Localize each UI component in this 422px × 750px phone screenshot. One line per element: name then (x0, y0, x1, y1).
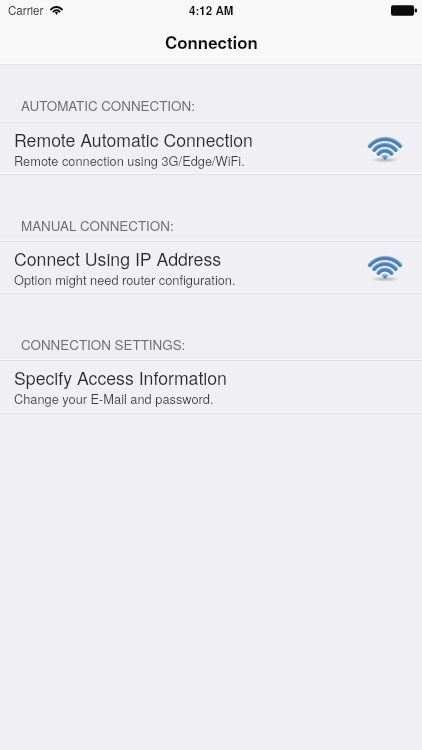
staticText: Connect Using IP Address (14, 246, 222, 271)
staticText: MANUAL CONNECTION: (21, 216, 174, 235)
staticText: Specify Access Information (14, 365, 227, 390)
other: Wi-Fi (369, 254, 401, 278)
button[interactable]: Specify Access Information (0, 360, 422, 413)
other: Wi-Fi (369, 135, 401, 159)
staticText: CONNECTION SETTINGS: (21, 335, 186, 354)
staticText: Option might need router configuration. (14, 270, 236, 288)
staticText: Change your E-Mail and password. (14, 389, 214, 407)
staticText: Connection (165, 30, 258, 54)
button[interactable]: Connect Using IP Address (0, 241, 422, 293)
staticText: 4:12 AM (189, 2, 234, 19)
staticText: Remote Automatic Connection (14, 127, 253, 152)
staticText: Carrier (8, 2, 44, 19)
staticText: Remote connection using 3G/Edge/WiFi. (14, 151, 245, 169)
staticText: AUTOMATIC CONNECTION: (21, 96, 195, 115)
button[interactable]: Remote Automatic Connection (0, 122, 422, 174)
